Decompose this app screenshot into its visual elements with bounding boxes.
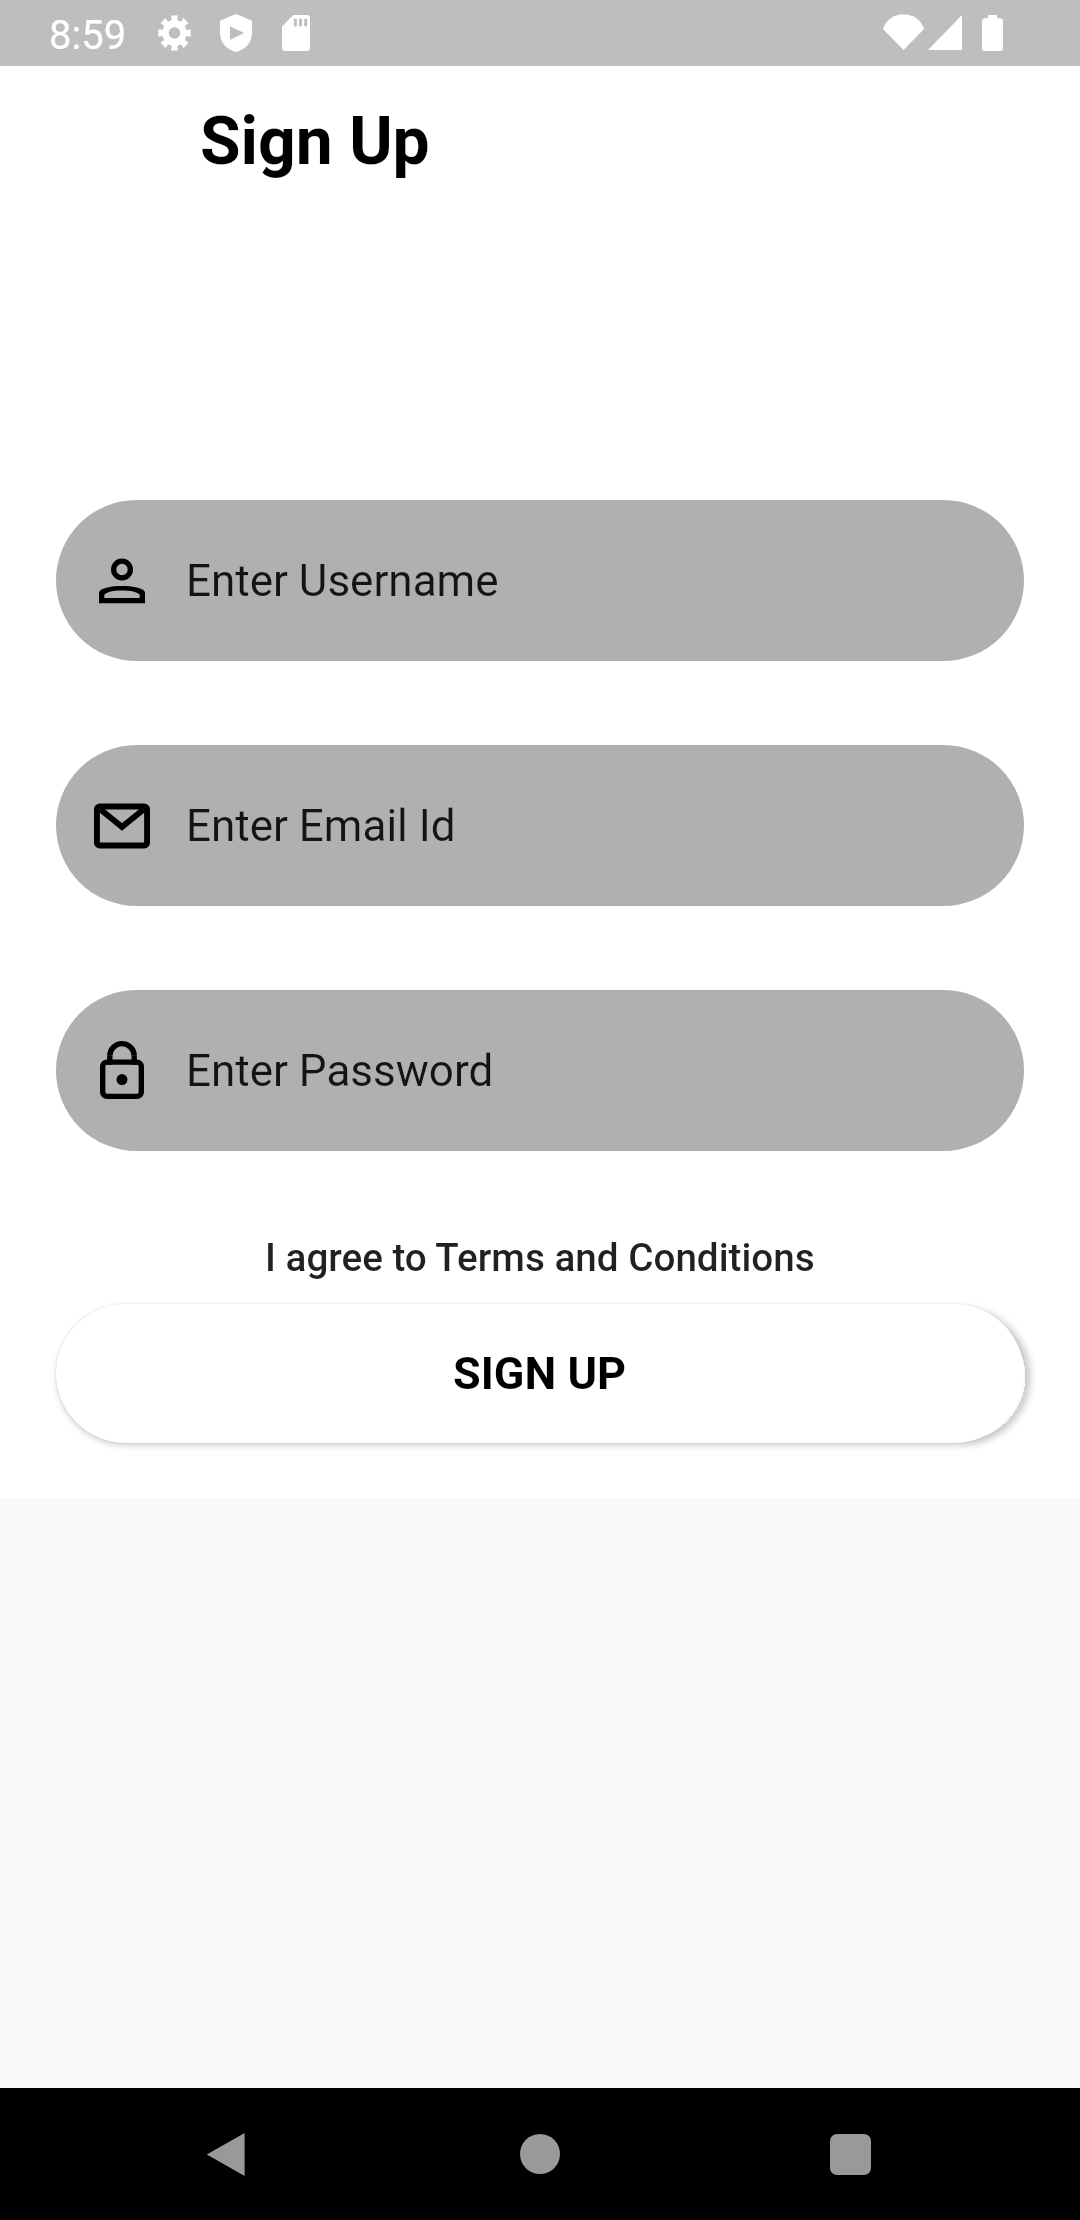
button[interactable]: SIGN UP — [56, 1304, 1024, 1443]
button[interactable]: Enter Username — [56, 500, 1024, 661]
staticText: Enter Email Id — [186, 800, 456, 852]
button[interactable]: Back — [170, 2099, 280, 2209]
staticText: Sign Up — [200, 103, 430, 180]
button[interactable]: Enter Password — [56, 990, 1024, 1151]
staticText: I agree to Terms and Conditions — [265, 1235, 815, 1280]
button[interactable]: Home — [485, 2099, 595, 2209]
button[interactable]: I agree to Terms and Conditions — [0, 1226, 1080, 1288]
button[interactable]: Enter Email Id — [56, 745, 1024, 906]
staticText: Enter Password — [186, 1045, 494, 1097]
button[interactable]: Recents — [795, 2099, 905, 2209]
staticText: 8:59 — [49, 12, 127, 59]
staticText: SIGN UP — [453, 1347, 627, 1400]
staticText: Enter Username — [186, 555, 499, 607]
